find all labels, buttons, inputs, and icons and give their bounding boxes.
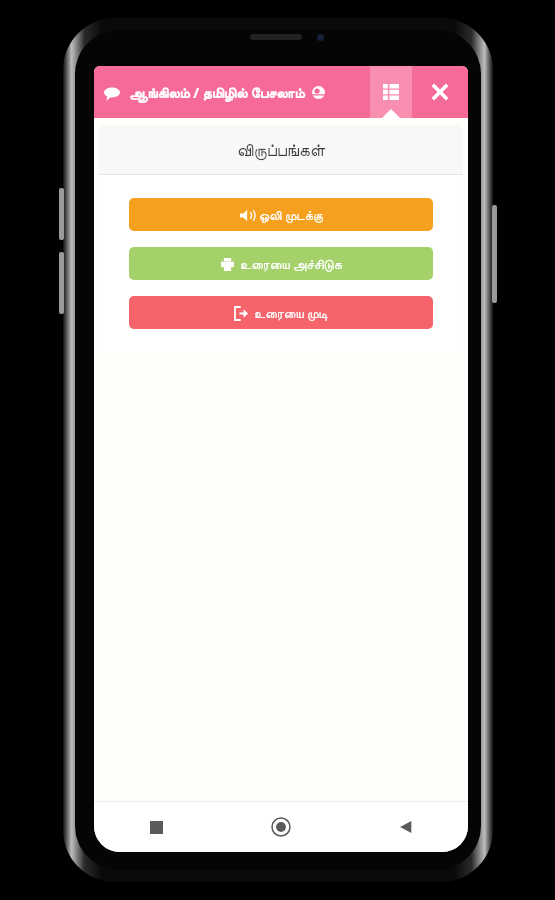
button[interactable]: Close: [412, 66, 468, 118]
button[interactable]: Menu: [370, 66, 412, 118]
button[interactable]: உரையை அச்சிடுக: [129, 247, 433, 280]
staticText: உரையை அச்சிடுக: [240, 255, 342, 273]
button[interactable]: ஒலி முடக்கு: [129, 198, 433, 231]
staticText: ஆங்கிலம் / தமிழில் பேசலாம்: [129, 83, 305, 102]
button[interactable]: Recent apps: [94, 802, 218, 852]
button[interactable]: உரையை முடி: [129, 296, 433, 329]
staticText: உரையை முடி: [254, 304, 328, 322]
button[interactable]: Back: [343, 802, 468, 852]
staticText: விருப்பங்கள்: [237, 142, 325, 159]
staticText: ஒலி முடக்கு: [259, 206, 323, 224]
button[interactable]: Home: [218, 802, 343, 852]
